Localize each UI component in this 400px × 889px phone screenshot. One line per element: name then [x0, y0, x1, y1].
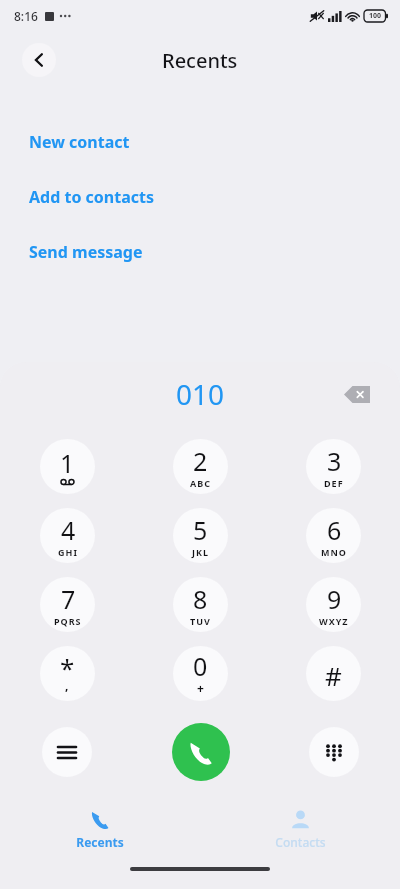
staticText: 010 — [176, 375, 225, 413]
button[interactable]: 2 — [173, 439, 228, 494]
button[interactable]: 0 — [173, 646, 228, 701]
button[interactable]: Send message — [0, 224, 400, 279]
staticText: 9 — [327, 582, 342, 616]
button[interactable]: More options — [42, 727, 92, 777]
staticText: 6 — [327, 513, 342, 547]
staticText: DEF — [324, 477, 344, 489]
staticText: * — [60, 650, 75, 685]
staticText: TUV — [190, 615, 211, 627]
staticText: Recents — [76, 834, 124, 850]
button[interactable]: Call — [172, 723, 230, 781]
button[interactable]: 8 — [173, 577, 228, 632]
button[interactable]: Contacts — [200, 802, 400, 860]
staticText: New contact — [29, 131, 130, 153]
staticText: 8 — [193, 582, 208, 616]
button[interactable]: Back — [22, 43, 56, 77]
staticText: WXYZ — [319, 615, 349, 627]
staticText: 1 — [60, 446, 75, 480]
staticText: 4 — [61, 513, 76, 547]
button[interactable]: 7 — [40, 577, 95, 632]
staticText: Send message — [29, 241, 143, 263]
button[interactable]: Delete — [340, 377, 374, 411]
staticText: 8:16 — [14, 8, 38, 24]
button[interactable]: 5 — [173, 508, 228, 563]
staticText: 0 — [193, 649, 208, 683]
staticText: GHI — [58, 546, 78, 558]
button[interactable]: 4 — [40, 508, 95, 563]
staticText: 3 — [327, 444, 342, 478]
staticText: 7 — [61, 582, 76, 616]
staticText: Recents — [162, 47, 238, 74]
button[interactable]: New contact — [0, 114, 400, 169]
staticText: 2 — [193, 444, 208, 478]
staticText: 5 — [193, 513, 208, 547]
staticText: 100 — [369, 11, 382, 21]
staticText: ABC — [190, 477, 211, 489]
button[interactable]: Add to contacts — [0, 169, 400, 224]
staticText: , — [65, 677, 70, 693]
button[interactable]: Keypad — [309, 727, 359, 777]
staticText: PQRS — [54, 615, 82, 627]
button[interactable]: 9 — [306, 577, 361, 632]
button[interactable]: # — [306, 646, 361, 701]
button[interactable]: Recents — [0, 802, 200, 860]
staticText: Contacts — [275, 834, 326, 850]
staticText: Add to contacts — [29, 186, 154, 208]
staticText: MNO — [321, 546, 347, 558]
button[interactable]: * — [40, 646, 95, 701]
button[interactable]: 6 — [306, 508, 361, 563]
staticText: JKL — [192, 546, 209, 558]
staticText: # — [325, 658, 342, 693]
button[interactable]: 1 — [40, 439, 95, 494]
staticText: + — [197, 680, 205, 696]
button[interactable]: 3 — [306, 439, 361, 494]
